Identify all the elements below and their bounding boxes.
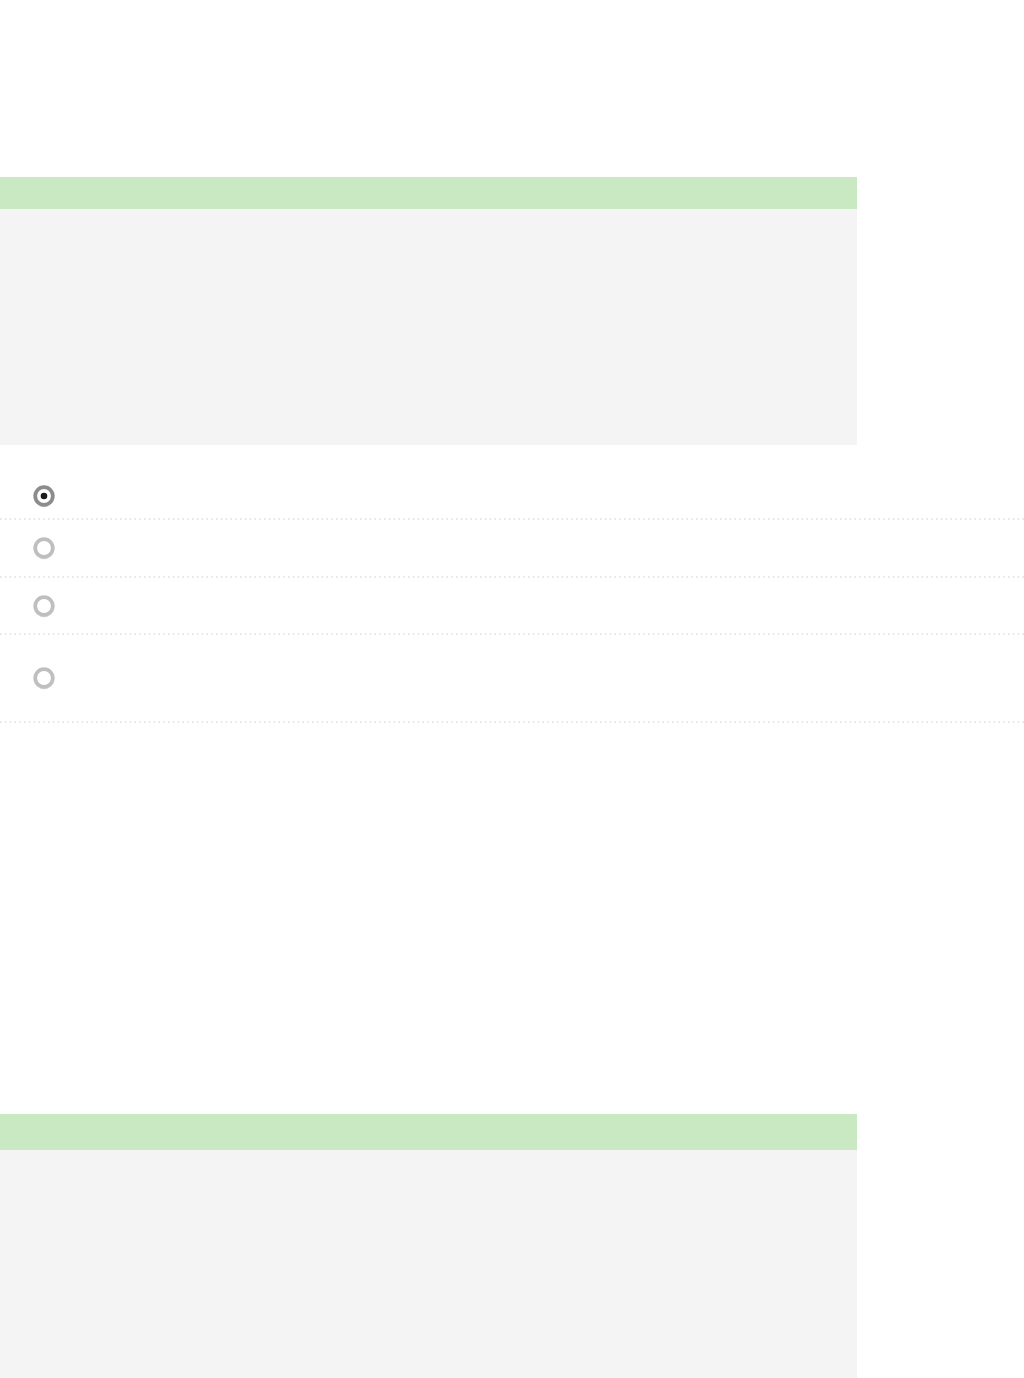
other: Select option	[33, 537, 55, 559]
other: Select option	[33, 485, 55, 507]
other: Select option	[33, 667, 55, 689]
button[interactable]: Select option	[0, 520, 1024, 576]
button[interactable]: Select option	[0, 473, 1024, 518]
button[interactable]: Select option	[0, 578, 1024, 633]
other: Select option	[33, 595, 55, 617]
